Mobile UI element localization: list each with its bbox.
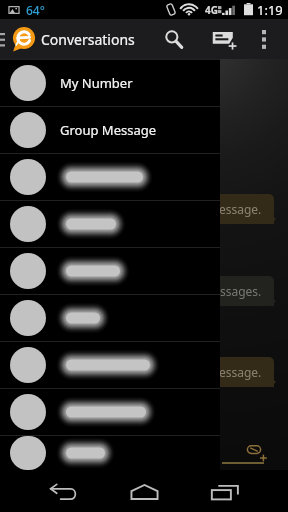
button[interactable]: Group Message [0, 107, 220, 153]
button[interactable] [0, 389, 220, 435]
staticText: Message. [208, 364, 262, 380]
button[interactable]: Open navigation drawer [0, 19, 5, 59]
staticText: 1:19 [257, 1, 283, 19]
button[interactable] [0, 295, 220, 341]
button[interactable] [0, 436, 220, 470]
button[interactable]: My Number [0, 60, 220, 106]
staticText: Group Message [60, 121, 157, 139]
button[interactable]: Search [147, 19, 201, 59]
staticText: Message. [208, 201, 262, 217]
staticText: My Number [60, 74, 133, 92]
button[interactable]: More options [251, 19, 277, 59]
button[interactable] [0, 154, 220, 200]
button[interactable] [0, 342, 220, 388]
staticText: messages. [202, 283, 262, 299]
button[interactable]: Attach [242, 438, 272, 468]
staticText: 4G [205, 3, 218, 17]
staticText: 64° [26, 2, 45, 18]
button[interactable] [0, 201, 220, 247]
button[interactable]: Back [34, 472, 94, 512]
button[interactable]: Recent apps [195, 472, 255, 512]
button[interactable] [0, 248, 220, 294]
staticText: Conversations [41, 30, 135, 49]
button[interactable]: Home [114, 472, 174, 512]
button[interactable]: New message [201, 19, 249, 59]
